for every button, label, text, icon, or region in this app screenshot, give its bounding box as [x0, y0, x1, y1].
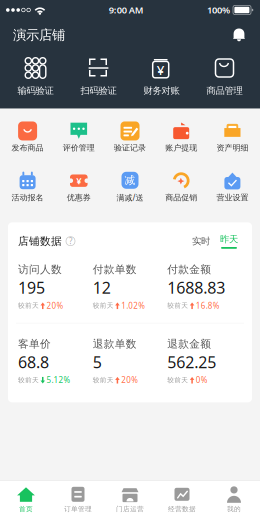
button[interactable]: 昨天 [216, 233, 242, 249]
staticText: 演示店铺 [13, 27, 65, 43]
staticText: 195 [18, 277, 45, 298]
staticText: 1688.83 [167, 277, 225, 298]
staticText: 商品管理 [206, 85, 242, 96]
staticText: 较前天 [18, 301, 39, 310]
staticText: 财务对账 [143, 85, 179, 96]
button[interactable]: 资产明细 [207, 121, 258, 153]
staticText: 经营数据 [168, 505, 196, 513]
staticText: 68.8 [18, 351, 49, 373]
staticText: 较前天 [167, 301, 188, 310]
staticText: 实时 [192, 235, 210, 247]
staticText: 20% [46, 300, 63, 311]
button[interactable]: 商品管理 [193, 57, 256, 96]
staticText: 资产明细 [216, 143, 248, 153]
staticText: 评价管理 [63, 143, 95, 153]
button[interactable]: 经营数据 [156, 486, 208, 513]
button[interactable]: ¥ [130, 57, 193, 96]
staticText: 100% [207, 4, 230, 16]
button[interactable]: 账户提现 [156, 121, 207, 153]
button[interactable]: 我的 [208, 486, 260, 513]
staticText: 活动报名 [12, 193, 44, 202]
button[interactable]: 实时 [186, 233, 216, 249]
button[interactable]: 验证记录 [104, 121, 156, 153]
staticText: 验证记录 [114, 143, 146, 153]
staticText: 5.12% [46, 375, 70, 385]
staticText: 满减/送 [116, 192, 143, 203]
staticText: 我的 [227, 505, 241, 513]
button[interactable]: 输码验证 [4, 57, 67, 96]
staticText: 订单管理 [64, 505, 92, 513]
button[interactable]: ¥ [53, 171, 104, 202]
staticText: 发布商品 [12, 143, 44, 153]
staticText: 昨天 [220, 233, 238, 245]
staticText: 退款金额 [167, 337, 211, 350]
staticText: 账户提现 [165, 143, 197, 153]
staticText: ¥ [76, 174, 81, 187]
staticText: 减 [124, 174, 135, 187]
staticText: 首页 [19, 505, 33, 513]
staticText: 付款金额 [167, 263, 211, 276]
staticText: ¥ [157, 61, 165, 79]
button[interactable]: 扫码验证 [67, 57, 130, 96]
staticText: 较前天 [93, 301, 114, 310]
staticText: 1.02% [121, 300, 145, 311]
staticText: 562.25 [167, 351, 216, 373]
staticText: 优惠券 [67, 193, 91, 202]
button[interactable]: 商品促销 [156, 171, 207, 202]
staticText: 较前天 [167, 376, 188, 384]
button[interactable]: 评价管理 [53, 121, 104, 153]
staticText: 5 [93, 351, 102, 373]
staticText: 输码验证 [17, 85, 53, 96]
staticText: 门店运营 [116, 505, 144, 513]
button[interactable]: 订单管理 [52, 486, 104, 513]
button[interactable]: 营业设置 [207, 171, 258, 202]
staticText: 较前天 [93, 376, 114, 384]
staticText: 客单价 [18, 337, 51, 350]
button[interactable]: 活动报名 [2, 171, 53, 202]
staticText: 0% [196, 375, 208, 385]
staticText: 店铺数据 [18, 235, 62, 248]
staticText: 付款单数 [93, 263, 137, 276]
staticText: 营业设置 [216, 193, 248, 202]
button[interactable]: 通知 [231, 26, 247, 43]
staticText: 较前天 [18, 376, 39, 384]
staticText: ? [69, 236, 72, 246]
staticText: 9:00 AM [109, 4, 144, 16]
button[interactable]: 首页 [0, 486, 52, 513]
staticText: 扫码验证 [80, 85, 116, 96]
staticText: 访问人数 [18, 263, 62, 276]
button[interactable]: 减 [104, 171, 156, 203]
staticText: 20% [121, 375, 138, 385]
button[interactable]: 门店运营 [104, 486, 156, 513]
staticText: 12 [93, 277, 111, 298]
staticText: 退款单数 [93, 337, 137, 350]
button[interactable]: 发布商品 [2, 121, 53, 153]
staticText: 16.8% [196, 300, 220, 311]
staticText: 商品促销 [165, 193, 197, 202]
